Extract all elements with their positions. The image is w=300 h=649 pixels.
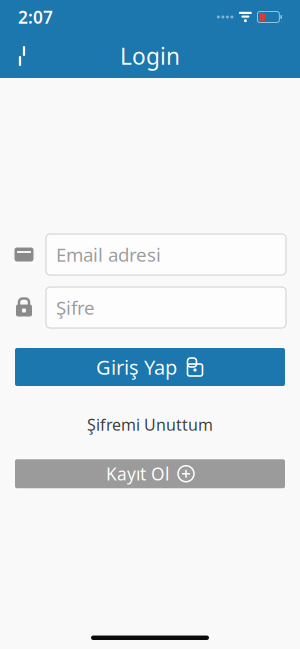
staticText: Login: [120, 41, 180, 71]
staticText: Şifre: [56, 295, 95, 320]
button[interactable]: Back: [0, 34, 44, 78]
staticText: 2:07: [18, 5, 53, 28]
staticText: Kayıt Ol: [106, 462, 169, 485]
button[interactable]: Kayıt Ol: [15, 459, 285, 488]
staticText: Email adresi: [56, 242, 161, 267]
button[interactable]: Şifremi Unuttum: [75, 408, 225, 441]
button[interactable]: Giriş Yap: [15, 348, 285, 386]
staticText: Şifremi Unuttum: [87, 414, 213, 435]
staticText: Giriş Yap: [96, 354, 177, 380]
